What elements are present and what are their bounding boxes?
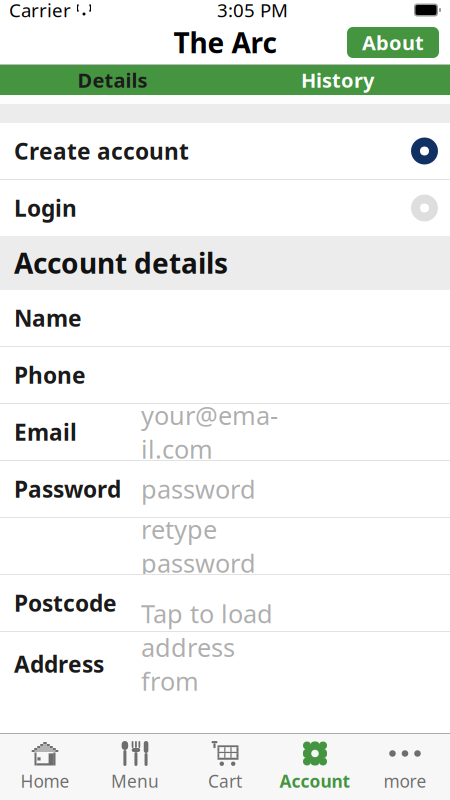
staticText: The Arc: [173, 24, 276, 61]
staticText: Address: [14, 649, 104, 679]
button[interactable]: more: [360, 734, 450, 798]
staticText: Home: [20, 769, 69, 792]
staticText: Create account: [14, 136, 189, 166]
staticText: retype password: [141, 512, 256, 580]
button[interactable]: Menu: [90, 734, 180, 798]
button[interactable]: Address: [0, 632, 450, 696]
button[interactable]: Phone: [0, 347, 450, 403]
button[interactable]: Cart: [180, 734, 270, 798]
button[interactable]: Email: [0, 404, 450, 460]
staticText: 3:05 PM: [217, 0, 288, 22]
button[interactable]: Name: [0, 290, 450, 346]
staticText: Email: [14, 417, 77, 447]
staticText: History: [301, 67, 374, 93]
staticText: Details: [77, 67, 147, 93]
staticText: Account details: [14, 244, 228, 282]
button[interactable]: retype password: [0, 518, 450, 574]
button[interactable]: Create account: [0, 123, 450, 179]
button[interactable]: Postcode: [0, 575, 450, 631]
staticText: Password: [14, 474, 121, 504]
button[interactable]: History: [225, 65, 450, 95]
staticText: Tap to load address from: [141, 597, 273, 698]
staticText: more: [383, 769, 426, 792]
staticText: your@email.com: [141, 398, 278, 466]
staticText: About: [362, 29, 424, 56]
button[interactable]: Details: [0, 65, 225, 95]
button[interactable]: About: [347, 27, 439, 58]
staticText: Cart: [208, 769, 242, 792]
button[interactable]: Account: [270, 734, 360, 798]
staticText: Postcode: [14, 588, 117, 618]
button[interactable]: Login: [0, 180, 450, 236]
button[interactable]: Home: [0, 734, 90, 798]
staticText: password: [141, 472, 256, 506]
staticText: Menu: [111, 769, 159, 792]
staticText: Login: [14, 193, 77, 223]
button[interactable]: Password: [0, 461, 450, 517]
staticText: Carrier: [9, 0, 71, 22]
staticText: Account: [279, 769, 350, 792]
staticText: Name: [14, 303, 82, 333]
staticText: Phone: [14, 360, 86, 390]
